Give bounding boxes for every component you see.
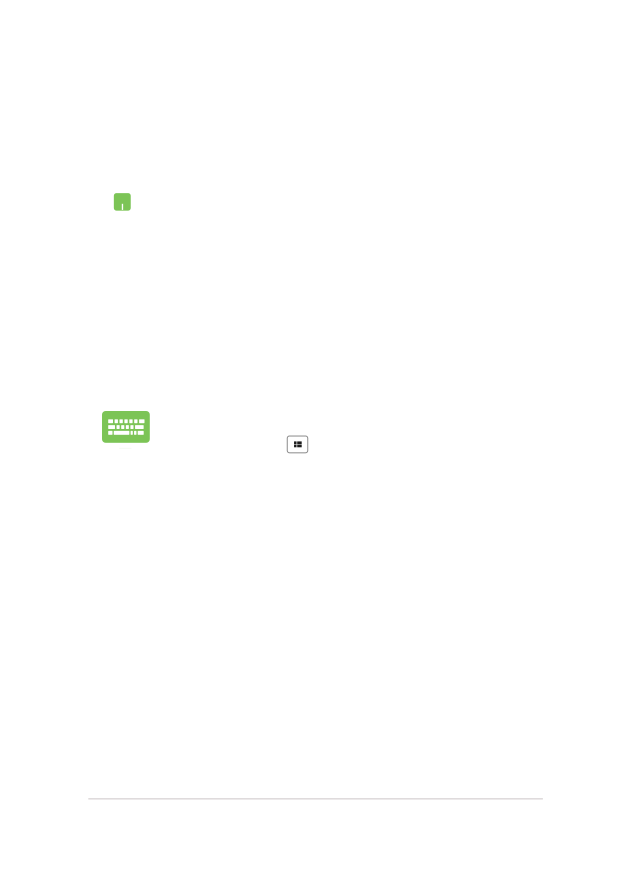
button[interactable]: Touchpad [114, 193, 131, 211]
button[interactable]: Windows key [287, 436, 308, 453]
button[interactable]: Keyboard [102, 411, 150, 443]
